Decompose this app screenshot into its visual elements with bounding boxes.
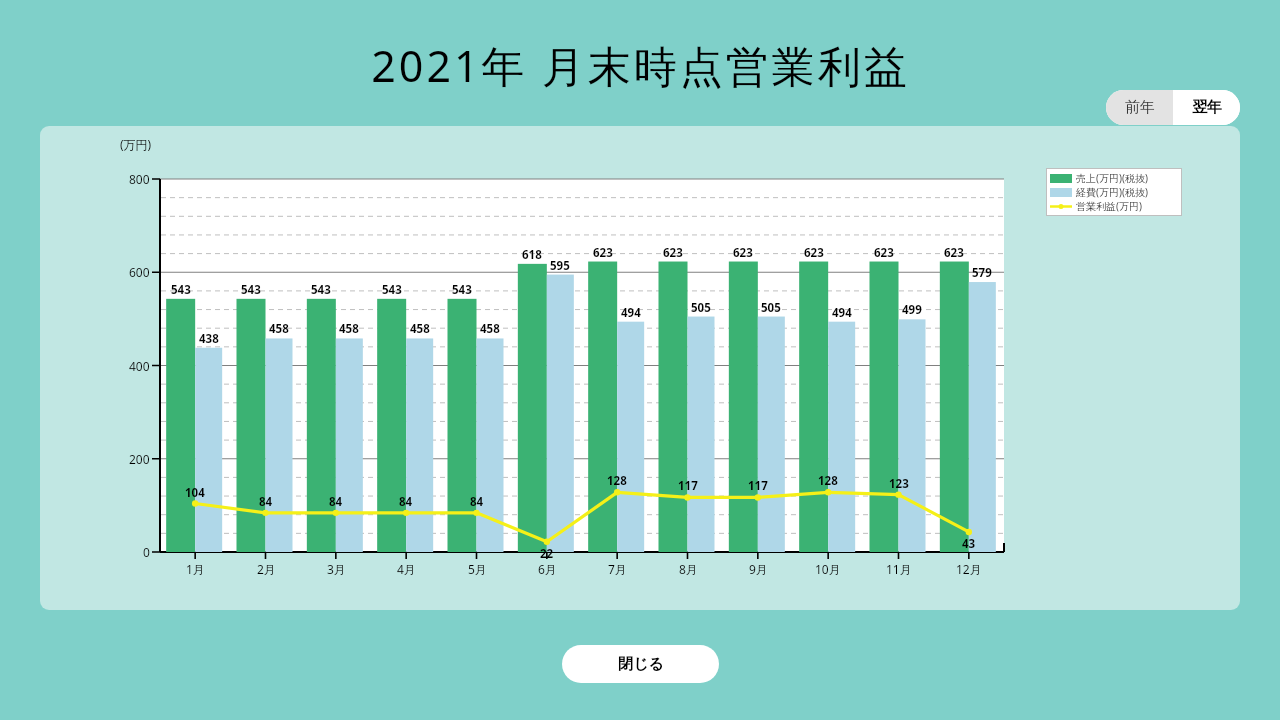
staticText: 84 — [399, 494, 413, 510]
staticText: 543 — [171, 282, 191, 298]
staticText: 458 — [410, 321, 430, 337]
staticText: 売上(万円)(税抜) — [1076, 171, 1148, 185]
staticText: 117 — [748, 478, 768, 494]
staticText: 22 — [540, 546, 554, 562]
staticText: 458 — [339, 321, 359, 337]
staticText: 84 — [259, 494, 273, 510]
staticText: 595 — [550, 258, 570, 274]
staticText: 494 — [621, 305, 641, 321]
staticText: 623 — [874, 245, 894, 261]
staticText: 12月 — [956, 561, 982, 577]
staticText: 閉じる — [618, 655, 664, 674]
staticText: 128 — [607, 473, 627, 489]
staticText: 前年 — [1125, 98, 1155, 117]
button[interactable]: 翌年 — [1173, 90, 1240, 125]
staticText: 43 — [962, 536, 976, 552]
staticText: 経費(万円)(税抜) — [1076, 185, 1148, 199]
staticText: 200 — [129, 451, 150, 467]
staticText: 618 — [522, 247, 542, 263]
staticText: 623 — [944, 245, 964, 261]
staticText: 494 — [832, 305, 852, 321]
staticText: 543 — [311, 282, 331, 298]
staticText: 117 — [678, 478, 698, 494]
staticText: 458 — [480, 321, 500, 337]
staticText: 4月 — [397, 561, 416, 577]
staticText: 11月 — [886, 561, 912, 577]
staticText: 10月 — [815, 561, 841, 577]
staticText: 123 — [889, 476, 909, 492]
staticText: 2021年 月末時点営業利益 — [371, 36, 910, 95]
staticText: (万円) — [120, 136, 152, 152]
staticText: 84 — [470, 494, 484, 510]
staticText: 0 — [143, 544, 150, 560]
button[interactable]: 閉じる — [562, 645, 719, 683]
staticText: 6月 — [538, 561, 557, 577]
staticText: 5月 — [468, 561, 487, 577]
staticText: 543 — [241, 282, 261, 298]
staticText: 623 — [663, 245, 683, 261]
staticText: 84 — [329, 494, 343, 510]
button[interactable]: 前年 — [1106, 90, 1173, 125]
staticText: 800 — [129, 171, 150, 187]
staticText: 翌年 — [1192, 98, 1222, 117]
staticText: 104 — [185, 485, 205, 501]
staticText: 600 — [129, 264, 150, 280]
staticText: 623 — [804, 245, 824, 261]
staticText: 579 — [972, 265, 992, 281]
staticText: 7月 — [608, 561, 627, 577]
staticText: 505 — [761, 300, 781, 316]
staticText: 543 — [452, 282, 472, 298]
staticText: 543 — [382, 282, 402, 298]
staticText: 営業利益(万円) — [1076, 199, 1142, 213]
staticText: 438 — [199, 331, 219, 347]
staticText: 400 — [129, 358, 150, 374]
staticText: 623 — [733, 245, 753, 261]
staticText: 128 — [818, 473, 838, 489]
staticText: 8月 — [679, 561, 698, 577]
staticText: 9月 — [749, 561, 768, 577]
staticText: 499 — [902, 302, 922, 318]
staticText: 1月 — [186, 561, 205, 577]
staticText: 623 — [593, 245, 613, 261]
staticText: 458 — [269, 321, 289, 337]
staticText: 2月 — [257, 561, 276, 577]
staticText: 505 — [691, 300, 711, 316]
staticText: 3月 — [327, 561, 346, 577]
